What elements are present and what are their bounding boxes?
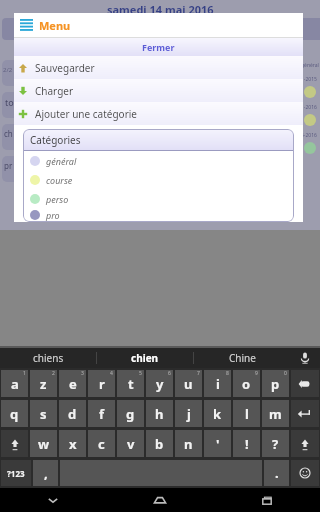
staticText: ! [245,435,249,453]
staticText: 8 [226,370,229,377]
staticText: ' [216,435,220,453]
button[interactable]: ? [262,430,289,457]
button[interactable]: 1 [1,370,28,397]
staticText: f [99,405,105,423]
button[interactable]: ?123 [1,460,31,486]
button[interactable]: 5 [117,370,144,397]
staticText: v [127,435,135,453]
staticText: chien [131,351,159,365]
staticText: x [69,435,77,453]
button[interactable]: 6 [146,370,173,397]
staticText: samedi 14 mai 2016 [107,2,214,17]
button[interactable]: 2 [30,370,57,397]
staticText: chiens [33,351,64,365]
button[interactable]: w [30,430,57,457]
button[interactable]: chien [97,348,193,368]
button[interactable]: m [262,400,289,427]
button[interactable]: Home [106,488,213,512]
staticText: to [5,96,14,108]
button[interactable]: Fermer [14,38,303,56]
staticText: d [68,405,77,423]
staticText: ?123 [7,468,25,479]
button[interactable]: l [233,400,260,427]
button[interactable]: b [146,430,173,457]
button[interactable]: Recent apps [213,488,320,512]
button[interactable]: perso [23,189,294,208]
staticText: 4 [110,370,113,377]
staticText: 5-2016 [301,132,317,139]
button[interactable]: x [59,430,86,457]
button[interactable]: , [33,460,58,486]
staticText: y [156,375,164,393]
staticText: u [184,375,193,393]
button[interactable]: s [30,400,57,427]
button[interactable]: 7 [175,370,202,397]
button[interactable]: ! [233,430,260,457]
button[interactable]: 0 [262,370,289,397]
staticText: 9 [255,370,258,377]
button[interactable]: 4 [88,370,115,397]
staticText: k [213,405,222,423]
button[interactable]: j [175,400,202,427]
button[interactable]: f [88,400,115,427]
staticText: 6 [168,370,171,377]
staticText: 0 [284,370,287,377]
button[interactable]: c [88,430,115,457]
staticText: r [99,375,105,393]
button[interactable]: pro [23,208,294,222]
button[interactable]: k [204,400,231,427]
button[interactable]: Menu [14,13,303,37]
button[interactable]: g [117,400,144,427]
button[interactable]: Emoji [291,460,319,486]
staticText: Chine [229,351,256,365]
button[interactable]: Shift [291,430,319,457]
button[interactable]: ' [204,430,231,457]
staticText: n [184,435,193,453]
staticText: z [40,375,47,393]
staticText: . [275,464,279,482]
button[interactable]: v [117,430,144,457]
button[interactable]: d [59,400,86,427]
staticText: 1 [23,370,26,377]
staticText: 2 [52,370,55,377]
other: Menu [20,19,33,32]
button[interactable]: chiens [0,348,96,368]
staticText: 5 [139,370,142,377]
staticText: 7 [197,370,200,377]
staticText: pr [4,160,13,171]
button[interactable]: Shift [1,430,28,457]
staticText: Ajouter une catégorie [35,107,137,121]
staticText: a [11,375,19,393]
staticText: ch [4,128,13,139]
staticText: général [301,62,319,69]
button[interactable]: Enter [291,400,319,427]
staticText: g [126,405,135,423]
button[interactable]: course [23,170,294,189]
staticText: e [69,375,77,393]
button[interactable]: 8 [204,370,231,397]
button[interactable]: Voice input [290,348,320,368]
button[interactable]: . [264,460,289,486]
button[interactable]: 3 [59,370,86,397]
button[interactable]: Charger [14,79,303,102]
staticText: Menu [39,18,71,33]
staticText: général [46,155,77,167]
staticText: 1-2015 [301,76,317,83]
button[interactable]: Ajouter une catégorie [14,102,303,125]
staticText: w [38,435,50,453]
button[interactable]: Backspace [291,370,319,397]
staticText: 3 [81,370,84,377]
button[interactable]: q [1,400,28,427]
staticText: q [10,405,19,423]
button[interactable]: 9 [233,370,260,397]
button[interactable]: Chine [194,348,290,368]
button[interactable]: n [175,430,202,457]
staticText: Fermer [142,41,175,53]
button[interactable]: Sauvegarder [14,56,303,79]
staticText: t [128,375,134,393]
staticText: j [187,405,191,423]
button[interactable]: général [23,151,294,170]
button[interactable]: h [146,400,173,427]
button[interactable]: Hide keyboard [0,488,106,512]
